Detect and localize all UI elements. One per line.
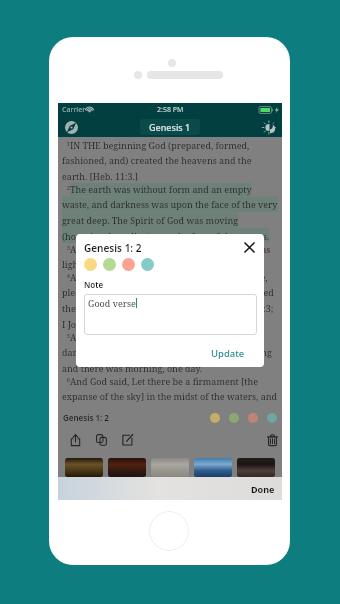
staticText: Genesis 1: 2	[63, 412, 109, 423]
button[interactable]: Highlight colour	[248, 413, 258, 423]
button[interactable]: Image	[151, 458, 189, 477]
button[interactable]: Image	[237, 458, 275, 477]
button[interactable]: Edit	[120, 432, 135, 447]
button[interactable]: Highlight colour	[210, 413, 220, 423]
button[interactable]: Image	[194, 458, 232, 477]
staticText: 3And God said, Let there be light; and t…	[62, 243, 278, 271]
button[interactable]: Highlight colour	[229, 413, 239, 423]
button[interactable]: Highlight colour	[267, 413, 277, 423]
button[interactable]: Highlight colour	[122, 258, 135, 271]
button[interactable]: Close	[242, 240, 257, 255]
button[interactable]: Delete	[265, 432, 280, 447]
button[interactable]: Highlight colour	[103, 258, 116, 271]
staticText: Done	[251, 483, 275, 495]
staticText: Note	[84, 279, 104, 290]
button[interactable]: Done	[244, 479, 282, 499]
button[interactable]: Image	[108, 458, 146, 477]
button[interactable]: Browse	[62, 118, 80, 136]
button[interactable]: Image	[65, 458, 103, 477]
staticText: 2The earth was without form and an empty…	[62, 183, 278, 243]
staticText: 2:58 PM	[157, 105, 184, 115]
staticText: Update	[211, 347, 245, 360]
button[interactable]: Copy	[94, 432, 109, 447]
staticText: Genesis 1	[149, 121, 191, 133]
staticText: 4And God saw that the light was good (su…	[62, 271, 278, 331]
button[interactable]: Share	[68, 432, 83, 447]
button[interactable]: Update	[210, 346, 246, 361]
button[interactable]: Highlight colour	[84, 258, 97, 271]
button[interactable]: Genesis 1	[140, 119, 200, 135]
staticText: 6And God said, Let there be a firmament …	[62, 375, 278, 435]
button[interactable]: Toggle night mode	[260, 118, 278, 136]
staticText: 1IN THE beginning God (prepared, formed,…	[62, 139, 278, 183]
staticText: Genesis 1: 2	[84, 241, 142, 255]
staticText: 5And God called the light out Day, and t…	[62, 331, 278, 375]
button[interactable]: Highlight colour	[141, 258, 154, 271]
staticText: Carrier	[62, 105, 86, 115]
staticText: Good verse	[88, 297, 136, 309]
